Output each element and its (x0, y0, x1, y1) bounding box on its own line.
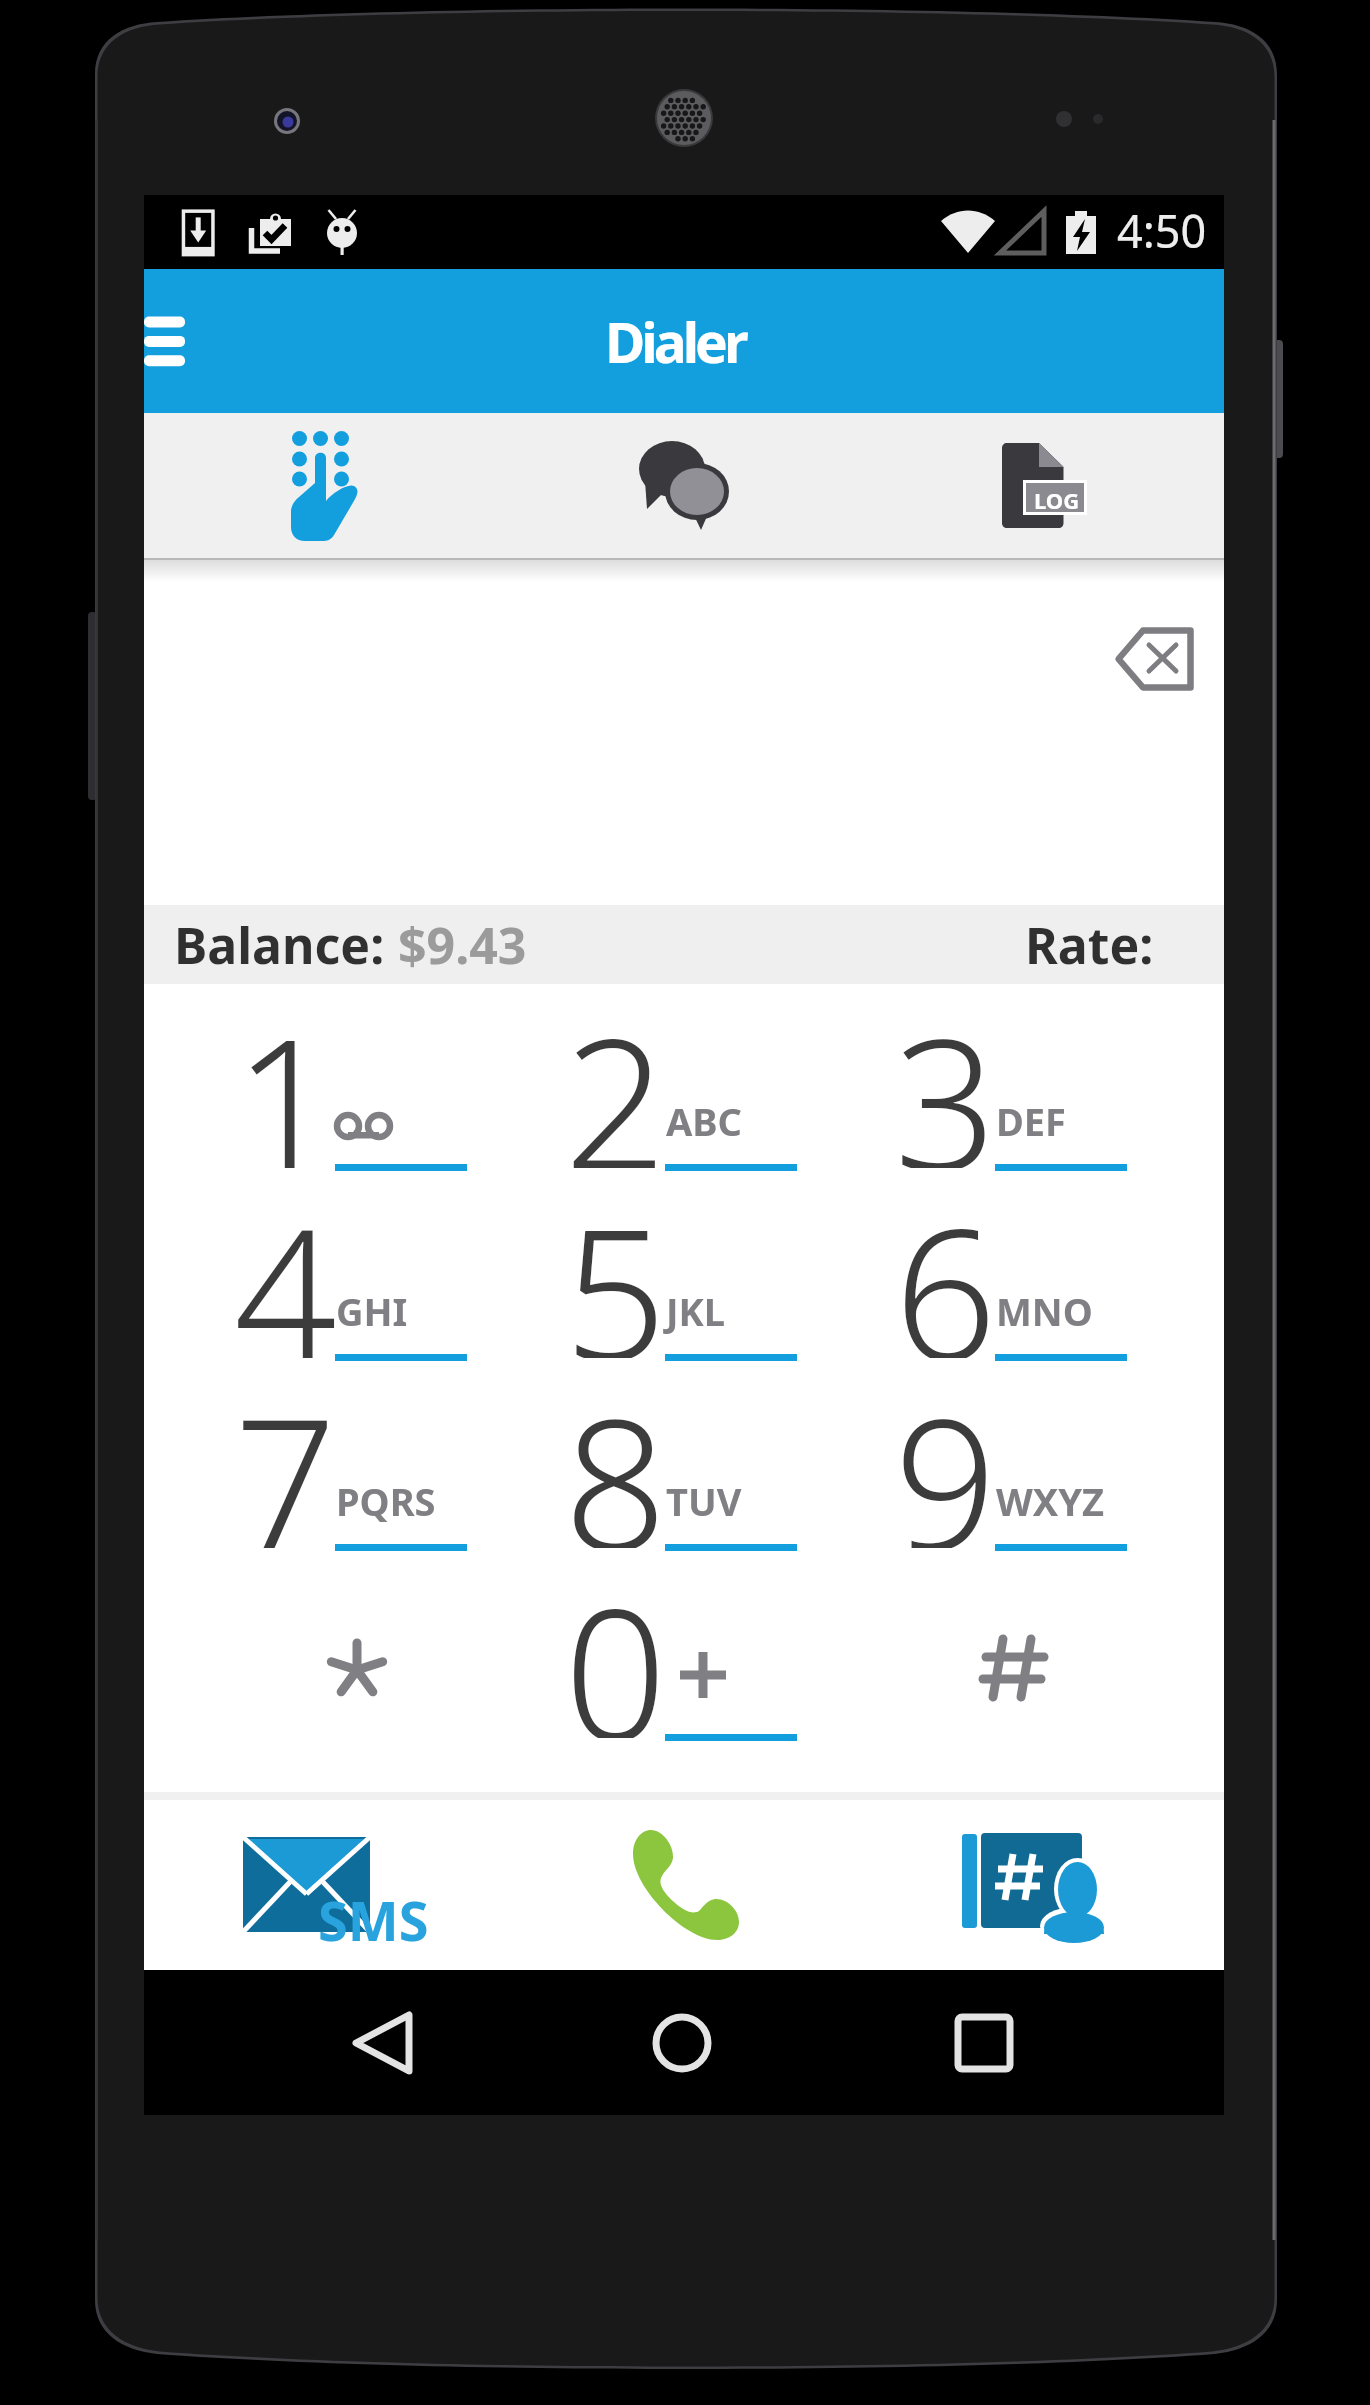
button[interactable]: 0 (519, 1554, 849, 1744)
button[interactable]: 3 (849, 984, 1179, 1174)
button[interactable]: 6 (849, 1174, 1179, 1364)
button[interactable]: Home (622, 1985, 742, 2100)
staticText: Balance: (174, 911, 398, 979)
staticText: JKL (666, 1285, 726, 1337)
staticText: 8 (564, 1358, 667, 1548)
staticText: SMS (318, 1883, 429, 1957)
staticText: 7 (234, 1358, 337, 1548)
staticText: Dialer (605, 304, 745, 379)
staticText: 5 (564, 1168, 667, 1358)
staticText: Rate: (1025, 911, 1154, 979)
staticText: 9 (894, 1358, 997, 1548)
button[interactable]: Messages (504, 413, 864, 558)
button[interactable]: 1 (189, 984, 519, 1174)
button[interactable]: Recent apps (924, 1985, 1044, 2100)
staticText: 4 (234, 1168, 337, 1358)
button[interactable]: 5 (519, 1174, 849, 1364)
button[interactable]: Call log (864, 413, 1224, 558)
staticText: ABC (666, 1095, 742, 1147)
staticText: 1 (234, 978, 337, 1168)
staticText: PQRS (336, 1475, 436, 1527)
staticText: 4:50 (1117, 200, 1207, 261)
button[interactable]: Open navigation menu (144, 296, 214, 386)
staticText: TUV (666, 1475, 742, 1527)
button[interactable] (849, 1554, 1179, 1744)
staticText: LOG (1034, 485, 1080, 515)
button[interactable]: 4 (189, 1174, 519, 1364)
staticText: 2 (564, 978, 667, 1168)
button[interactable]: Back (325, 1985, 445, 2100)
button[interactable]: Contacts (864, 1800, 1224, 1970)
button[interactable]: 8 (519, 1364, 849, 1554)
button[interactable]: 9 (849, 1364, 1179, 1554)
button[interactable]: 2 (519, 984, 849, 1174)
button[interactable]: Call (504, 1800, 864, 1970)
button[interactable]: 7 (189, 1364, 519, 1554)
staticText: 3 (894, 978, 997, 1168)
button[interactable] (189, 1554, 519, 1744)
button[interactable]: Send SMS (144, 1800, 504, 1970)
staticText: 0 (564, 1548, 667, 1738)
button[interactable]: Dialpad (144, 413, 504, 558)
staticText: MNO (996, 1285, 1093, 1337)
staticText: 6 (894, 1168, 997, 1358)
staticText: GHI (336, 1285, 408, 1337)
staticText: $9.43 (398, 911, 527, 979)
button[interactable]: Backspace (1115, 627, 1220, 711)
staticText: DEF (996, 1095, 1066, 1147)
staticText: WXYZ (996, 1475, 1104, 1527)
